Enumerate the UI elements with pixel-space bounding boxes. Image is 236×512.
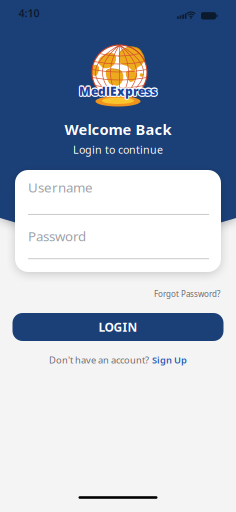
staticText: Forgot Password? bbox=[154, 289, 220, 299]
staticText: MediExpress bbox=[78, 82, 156, 98]
staticText: MediExpress bbox=[80, 83, 158, 99]
staticText: Welcome Back bbox=[64, 120, 171, 139]
button[interactable]: LOGIN bbox=[12, 313, 223, 341]
staticText: Don't have an account? bbox=[49, 354, 149, 366]
button[interactable]: Sign Up bbox=[152, 354, 187, 366]
button[interactable]: Password bbox=[28, 227, 209, 259]
staticText: Sign Up bbox=[152, 354, 187, 366]
staticText: MediExpress bbox=[79, 84, 157, 100]
staticText: 4:10 bbox=[18, 6, 39, 20]
button[interactable]: Username bbox=[28, 178, 209, 215]
staticText: Username bbox=[28, 178, 93, 196]
staticText: LOGIN bbox=[98, 319, 137, 335]
staticText: MediExpress bbox=[79, 82, 157, 98]
staticText: MediExpress bbox=[80, 82, 158, 98]
button[interactable]: Forgot Password? bbox=[154, 289, 220, 299]
staticText: MediExpress bbox=[80, 84, 158, 100]
staticText: MediExpress bbox=[78, 83, 156, 99]
staticText: Login to continue bbox=[73, 142, 163, 157]
staticText: MediExpress bbox=[79, 83, 157, 99]
staticText: Password bbox=[28, 227, 86, 245]
staticText: MediExpress bbox=[78, 84, 156, 100]
